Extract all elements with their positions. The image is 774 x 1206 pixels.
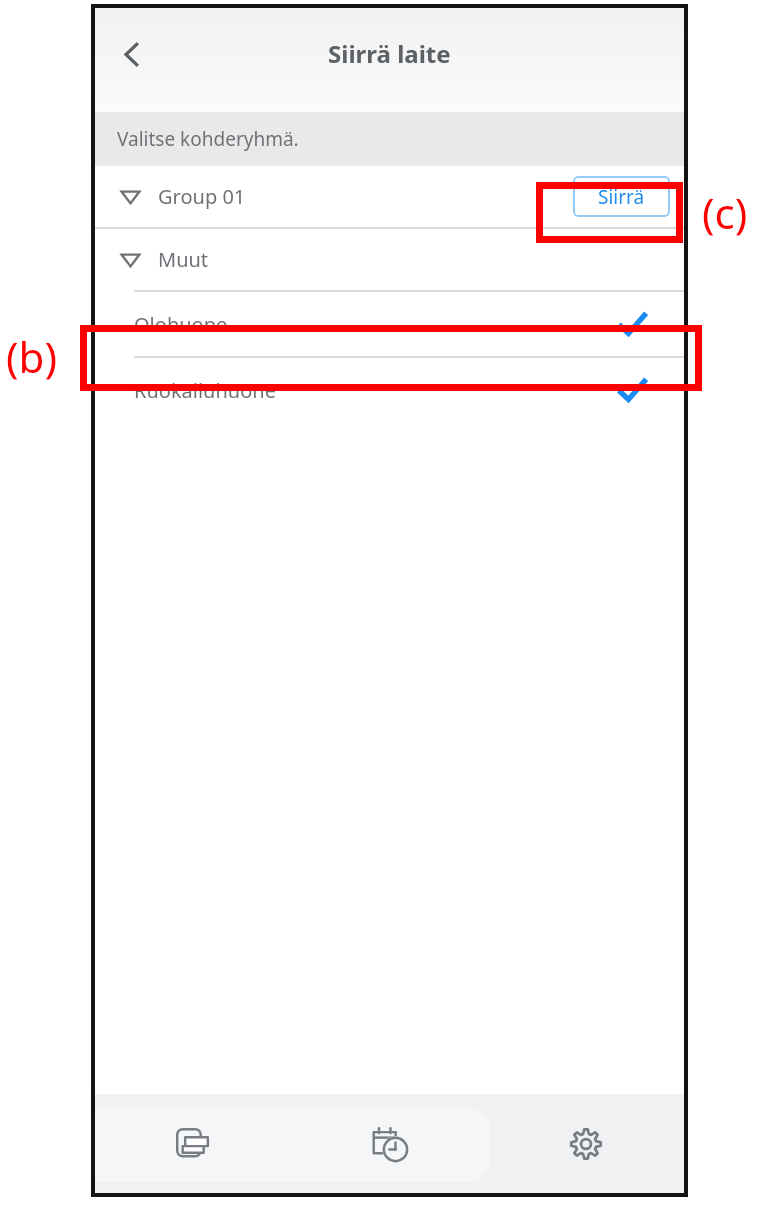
button[interactable]: Schedule: [292, 1094, 488, 1193]
button[interactable]: Settings: [488, 1094, 684, 1193]
staticText: Valitse kohderyhmä.: [117, 126, 299, 152]
staticText: (b): [6, 328, 58, 385]
button[interactable]: Ruokailuhuone: [95, 358, 684, 422]
staticText: Muut: [158, 246, 209, 273]
staticText: (c): [702, 184, 748, 241]
staticText: Siirrä: [598, 184, 645, 210]
button[interactable]: Devices: [95, 1094, 292, 1193]
staticText: Ruokailuhuone: [134, 377, 276, 404]
button[interactable]: Olohuone: [95, 292, 684, 356]
button[interactable]: Siirrä: [573, 176, 670, 217]
button[interactable]: Muut: [95, 229, 684, 290]
button[interactable]: Back: [103, 25, 161, 83]
staticText: Siirrä laite: [328, 37, 451, 70]
staticText: Olohuone: [134, 311, 228, 338]
button[interactable]: Group 01: [95, 166, 684, 227]
staticText: Group 01: [158, 183, 246, 210]
